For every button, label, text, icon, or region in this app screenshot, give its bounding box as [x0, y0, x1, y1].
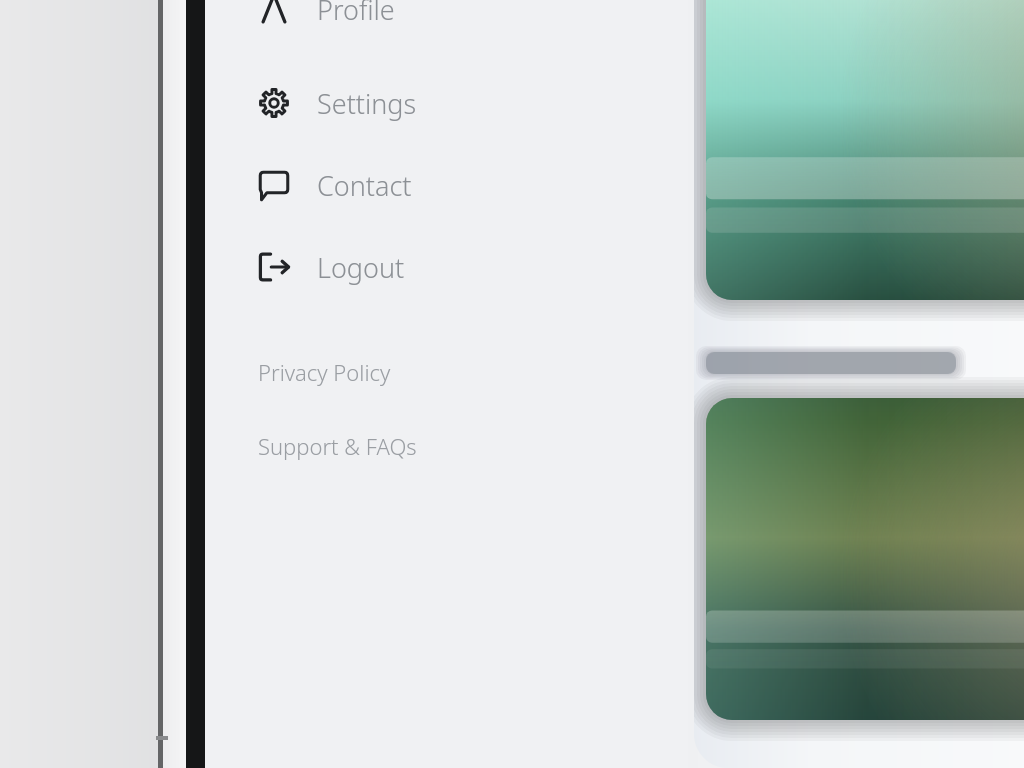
button[interactable]: Settings — [205, 76, 848, 130]
other: Settings — [256, 85, 292, 121]
button[interactable]: Contact — [205, 158, 848, 212]
other: Profile — [256, 0, 292, 27]
staticText: Contact — [317, 167, 412, 204]
button[interactable]: Privacy Policy — [205, 352, 848, 392]
button[interactable]: Profile — [205, 0, 848, 36]
staticText: Settings — [317, 85, 417, 122]
staticText: Privacy Policy — [258, 357, 391, 387]
staticText: Profile — [317, 0, 395, 28]
other: Contact — [256, 167, 292, 203]
button[interactable]: Logout — [205, 240, 848, 294]
staticText: Logout — [317, 249, 405, 286]
other: Logout — [256, 249, 292, 285]
staticText: Support & FAQs — [258, 431, 417, 461]
button[interactable]: Support & FAQs — [205, 426, 848, 466]
